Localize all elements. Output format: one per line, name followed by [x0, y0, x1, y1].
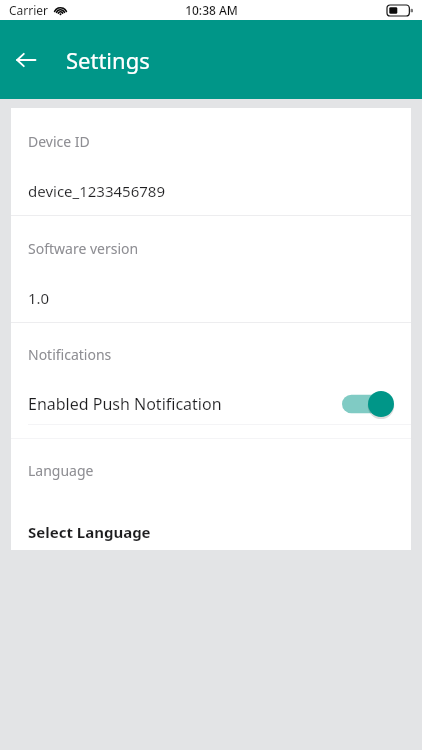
staticText: Language: [28, 461, 94, 480]
staticText: 1.0: [28, 288, 50, 308]
staticText: Settings: [66, 45, 150, 75]
button[interactable]: device_1233456789: [11, 181, 411, 201]
staticText: Select Language: [28, 522, 151, 542]
staticText: Notifications: [28, 345, 112, 364]
staticText: Enabled Push Notification: [28, 393, 222, 415]
staticText: Software version: [28, 239, 139, 258]
staticText: Carrier: [9, 2, 49, 18]
staticText: Device ID: [28, 132, 90, 151]
button[interactable]: Select Language: [11, 522, 411, 542]
button[interactable]: 1.0: [11, 288, 411, 308]
staticText: 10:38 AM: [185, 2, 238, 18]
button[interactable]: Enabled Push Notification: [11, 390, 411, 418]
button[interactable]: Back: [8, 42, 44, 78]
other: Push notification toggle, on: [342, 391, 394, 417]
staticText: device_1233456789: [28, 181, 165, 201]
